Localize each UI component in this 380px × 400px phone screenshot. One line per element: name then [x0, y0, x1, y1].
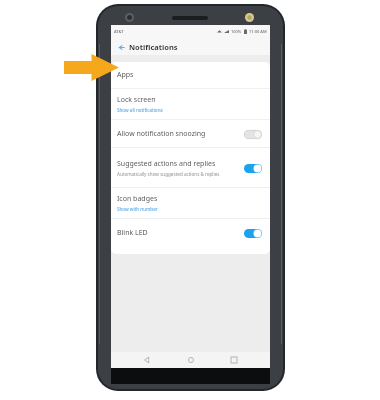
button[interactable]: Suggested actions and replies	[111, 148, 270, 187]
button[interactable]: Toggle off	[242, 127, 264, 141]
staticText: Icon badges	[117, 194, 158, 204]
staticText: Automatically show suggested actions & r…	[117, 171, 220, 177]
button[interactable]: Apps	[111, 62, 270, 88]
staticText: 100%	[231, 29, 242, 34]
staticText: Apps	[117, 70, 134, 80]
button[interactable]: Icon badges	[111, 188, 270, 218]
button[interactable]: Back	[140, 353, 154, 367]
button[interactable]: Home	[184, 353, 198, 367]
staticText: AT&T	[114, 29, 124, 34]
button[interactable]: Recent apps	[227, 353, 241, 367]
staticText: Show with number	[117, 206, 158, 212]
staticText: Blink LED	[117, 228, 148, 238]
staticText: Lock screen	[117, 95, 156, 105]
button[interactable]: Back	[115, 41, 127, 53]
staticText: 11:00 AM	[249, 29, 267, 34]
staticText: Suggested actions and replies	[117, 159, 216, 169]
staticText: Show all notifications	[117, 107, 163, 113]
staticText: Notifications	[129, 42, 178, 52]
button[interactable]: Blink LED	[111, 219, 270, 246]
button[interactable]: Lock screen	[111, 89, 270, 119]
button[interactable]: Toggle on	[242, 161, 264, 175]
button[interactable]: Toggle on	[242, 226, 264, 240]
staticText: Allow notification snoozing	[117, 129, 206, 139]
button[interactable]: Allow notification snoozing	[111, 120, 270, 147]
